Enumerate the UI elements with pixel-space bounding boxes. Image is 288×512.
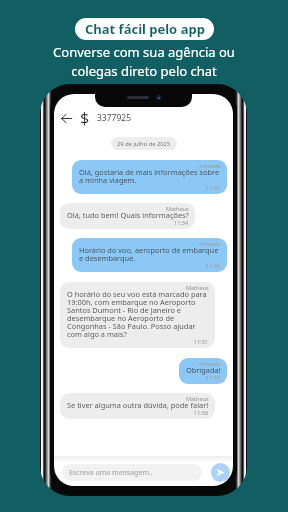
staticText: Matheus — [186, 285, 209, 291]
staticText: Matheus — [166, 206, 189, 212]
staticText: O horário do seu voo está marcado para 1… — [67, 291, 209, 339]
staticText: 11:29 — [206, 185, 221, 191]
staticText: 11:57 — [206, 375, 221, 381]
button[interactable]: Matheus — [60, 203, 195, 229]
staticText: Olá, tudo bem! Quais informações? — [67, 212, 189, 220]
button[interactable]: Amanda — [72, 160, 227, 194]
staticText: Amanda — [199, 361, 221, 367]
button[interactable]: Matheus — [60, 393, 215, 419]
staticText: Chat fácil pelo app — [85, 20, 205, 38]
button[interactable]: Amanda — [179, 358, 227, 384]
button[interactable]: Chat fácil pelo app — [75, 18, 214, 40]
staticText: Horário do voo, aeroporto de embarque e … — [79, 247, 221, 263]
staticText: 11:41 — [206, 263, 221, 269]
button[interactable]: Matheus — [60, 282, 215, 348]
staticText: Olá, gostaria de mais informações sobre … — [79, 169, 221, 185]
staticText: Amanda — [199, 163, 221, 169]
staticText: $ — [80, 107, 90, 129]
staticText: Amanda — [199, 241, 221, 247]
staticText: Obrigada! — [186, 367, 221, 375]
button[interactable]: Amanda — [72, 238, 227, 272]
staticText: 3377925 — [97, 112, 132, 124]
staticText: 11:34 — [174, 220, 189, 226]
staticText: Se tiver alguma outra dúvida, pode falar… — [67, 402, 209, 410]
button[interactable]: Escreva uma mensagem.. — [62, 464, 202, 481]
button[interactable]: Enviar — [211, 463, 230, 482]
staticText: 11:58 — [194, 410, 209, 416]
staticText: Converse com sua agência ou colegas dire… — [0, 43, 288, 80]
staticText: 29 de julho de 2025 — [117, 140, 171, 148]
staticText: Matheus — [186, 396, 209, 402]
button[interactable]: Voltar — [57, 109, 75, 127]
staticText: Escreva uma mensagem.. — [69, 468, 153, 478]
staticText: 11:51 — [194, 339, 209, 345]
